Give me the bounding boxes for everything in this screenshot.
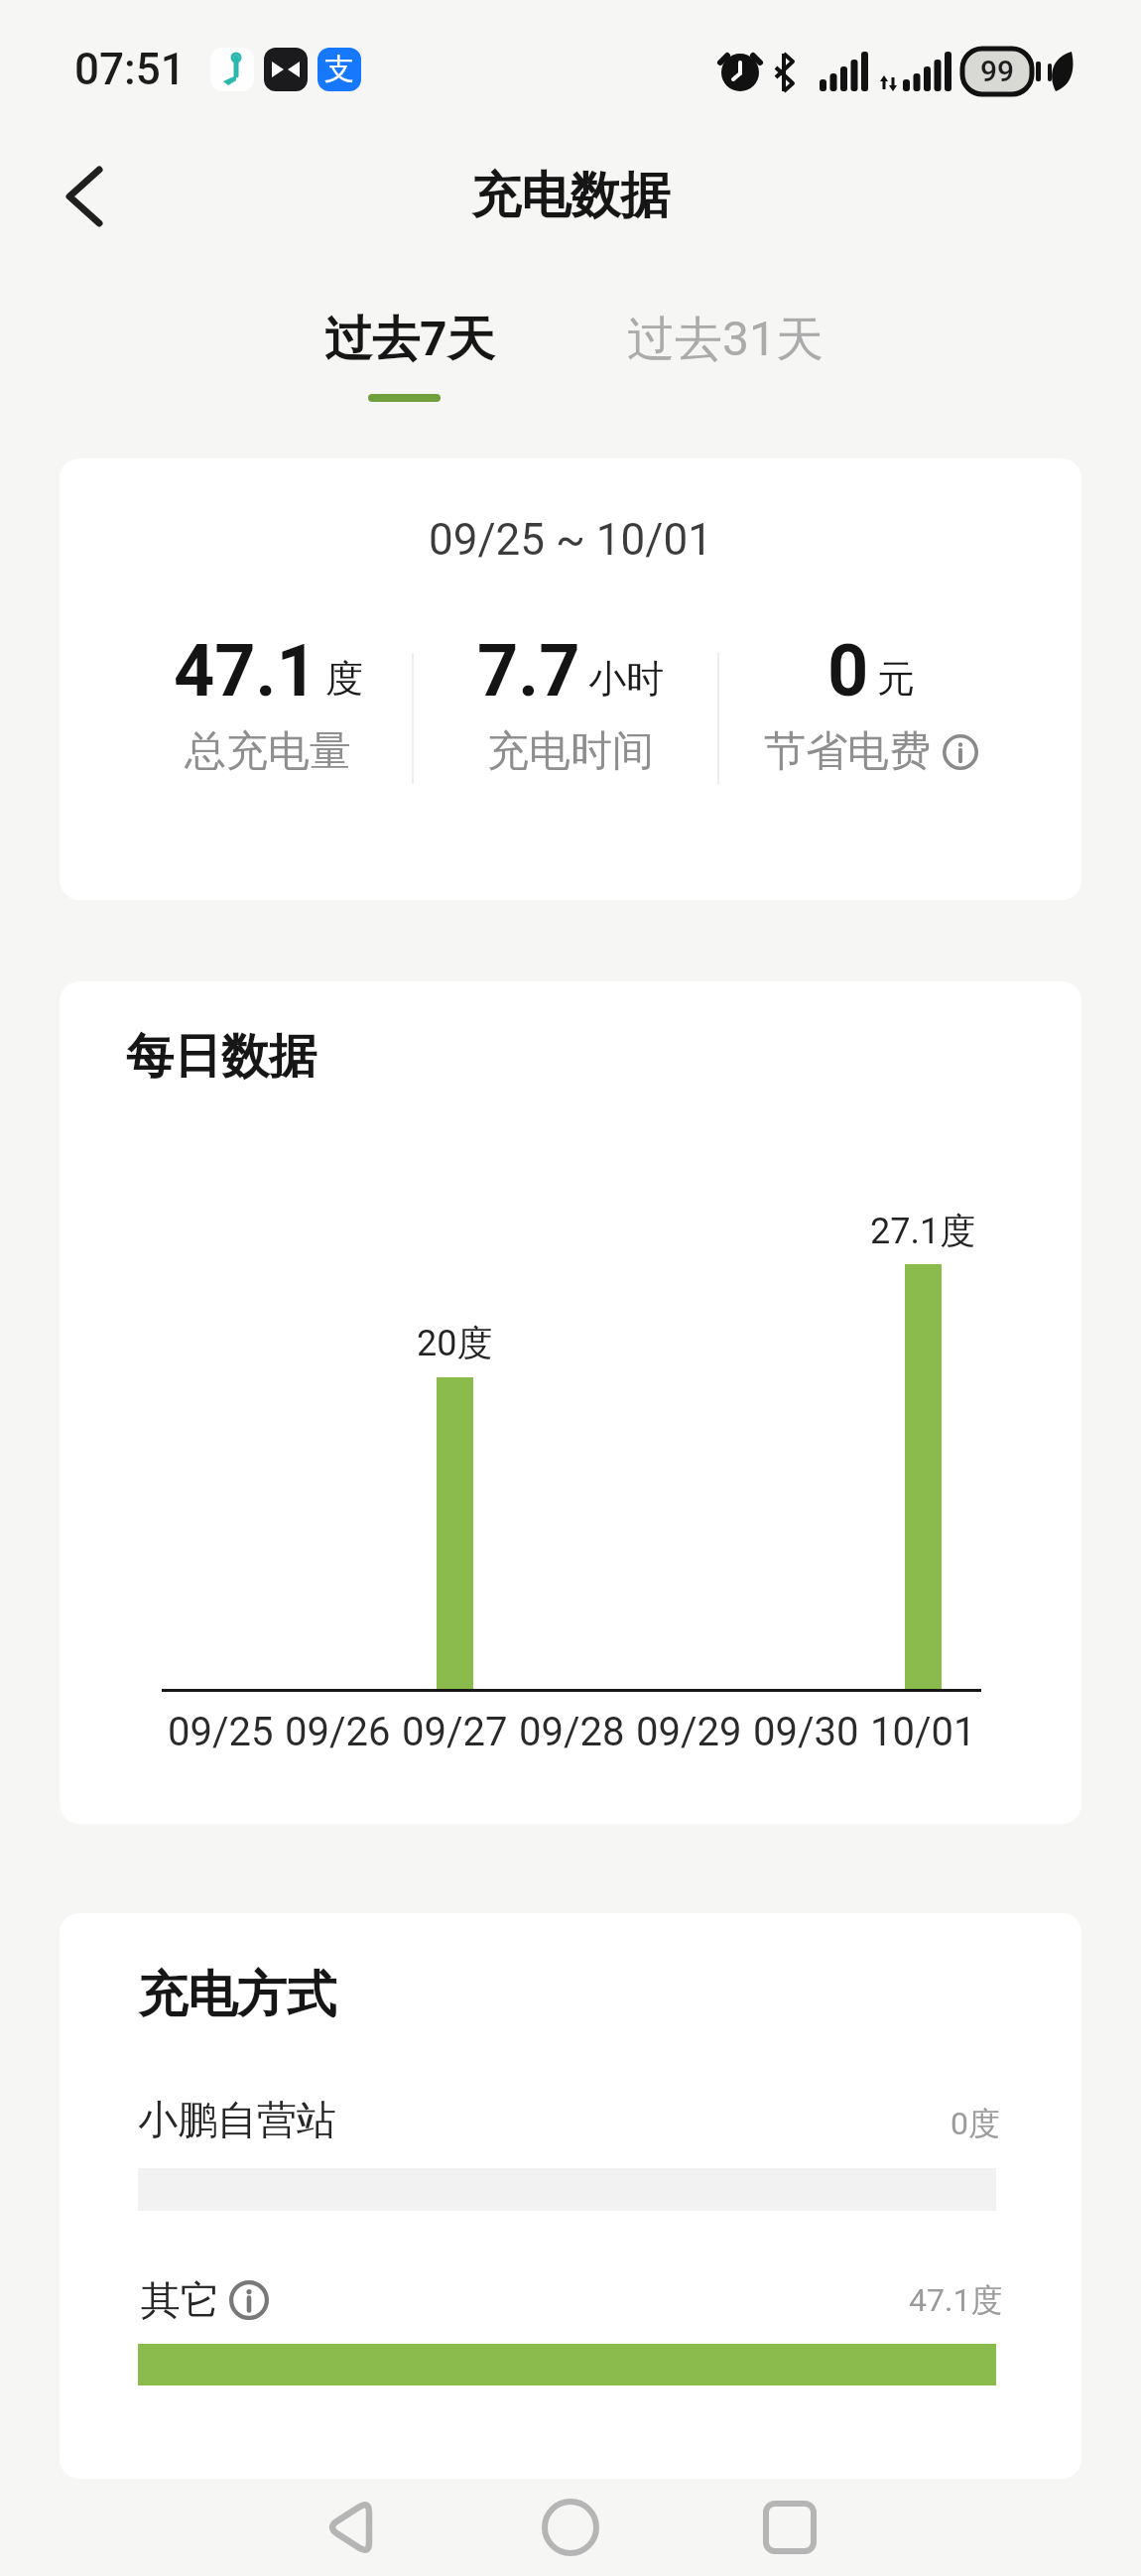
staticText: 99	[980, 54, 1015, 88]
staticText: 09/27	[402, 1709, 508, 1755]
staticText: 47.1度	[909, 2280, 1003, 2320]
button[interactable]	[529, 2486, 612, 2569]
staticText: 27.1度	[870, 1209, 976, 1253]
staticText: 充电时间	[487, 725, 654, 778]
staticText: 支	[324, 51, 354, 88]
button[interactable]	[615, 298, 843, 407]
staticText: 过去7天	[324, 310, 495, 369]
staticText: 47.1	[174, 629, 317, 712]
staticText: 0度	[951, 2104, 1000, 2143]
staticText: 7.7	[477, 629, 580, 712]
staticText: 元	[877, 655, 915, 703]
staticText: 充电数据	[471, 165, 670, 227]
staticText: 09/26	[285, 1709, 391, 1755]
staticText: 节省电费	[764, 725, 931, 778]
button[interactable]	[748, 2486, 831, 2569]
staticText: 过去31天	[627, 310, 824, 369]
staticText: 小鹏自营站	[138, 2095, 336, 2144]
button[interactable]	[48, 157, 119, 236]
staticText: 09/29	[636, 1709, 742, 1755]
staticText: 10/01	[870, 1709, 976, 1755]
staticText: 充电方式	[138, 1964, 336, 2026]
staticText: 其它	[141, 2275, 220, 2325]
staticText: 总充电量	[185, 725, 351, 778]
staticText: 每日数据	[126, 1027, 317, 1087]
staticText: 09/25	[168, 1709, 274, 1755]
staticText: 小时	[588, 655, 664, 703]
staticText: 09/30	[753, 1709, 859, 1755]
staticText: 09/25 ~ 10/01	[429, 514, 712, 566]
staticText: 20度	[417, 1321, 493, 1365]
button[interactable]	[308, 2486, 391, 2569]
staticText: 度	[325, 655, 363, 703]
staticText: 09/28	[519, 1709, 625, 1755]
staticText: 0	[827, 629, 869, 712]
button[interactable]	[298, 298, 526, 407]
staticText: 07:51	[74, 44, 186, 95]
